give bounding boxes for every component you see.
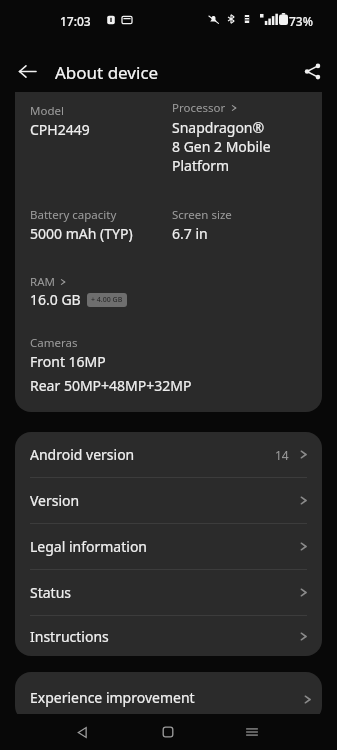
staticText: Legal information	[30, 537, 148, 556]
button[interactable]: RAM	[30, 274, 67, 290]
staticText: + 4.00 GB	[91, 295, 123, 305]
staticText: 8 Gen 2 Mobile	[172, 137, 271, 156]
staticText: CPH2449	[30, 120, 90, 139]
button[interactable]: Status	[15, 570, 322, 615]
button[interactable]: Android version	[15, 432, 322, 477]
button[interactable]: Back	[68, 718, 96, 746]
staticText: Battery capacity	[30, 207, 117, 223]
button[interactable]: Recent apps	[238, 718, 266, 746]
button[interactable]: Processor	[172, 100, 238, 116]
staticText: Processor	[172, 100, 226, 116]
staticText: Platform	[172, 156, 230, 175]
button[interactable]: Version	[15, 478, 322, 523]
button[interactable]: Experience improvement	[15, 672, 322, 722]
staticText: RAM	[30, 274, 55, 290]
staticText: Instructions	[30, 627, 109, 646]
staticText: About device	[55, 61, 159, 84]
staticText: Android version	[30, 445, 135, 464]
staticText: 16.0 GB	[30, 290, 81, 309]
staticText: 73%	[289, 13, 313, 29]
staticText: Cameras	[30, 335, 78, 351]
staticText: 6.7 in	[172, 224, 208, 243]
staticText: Model	[30, 103, 64, 119]
staticText: Front 16MP	[30, 352, 106, 371]
staticText: 17:03	[60, 13, 91, 29]
staticText: Screen size	[172, 207, 232, 223]
staticText: 5000 mAh (TYP)	[30, 224, 133, 243]
staticText: Version	[30, 491, 80, 510]
staticText: Rear 50MP+48MP+32MP	[30, 376, 192, 395]
button[interactable]: Home	[154, 718, 182, 746]
button[interactable]: Legal information	[15, 524, 322, 569]
staticText: Snapdragon®	[172, 118, 265, 137]
staticText: 14	[275, 447, 289, 463]
staticText: Experience improvement	[30, 688, 195, 707]
button[interactable]: Back	[11, 55, 44, 88]
button[interactable]: Share	[296, 55, 329, 88]
button[interactable]: Instructions	[15, 616, 322, 656]
staticText: Status	[30, 583, 72, 602]
